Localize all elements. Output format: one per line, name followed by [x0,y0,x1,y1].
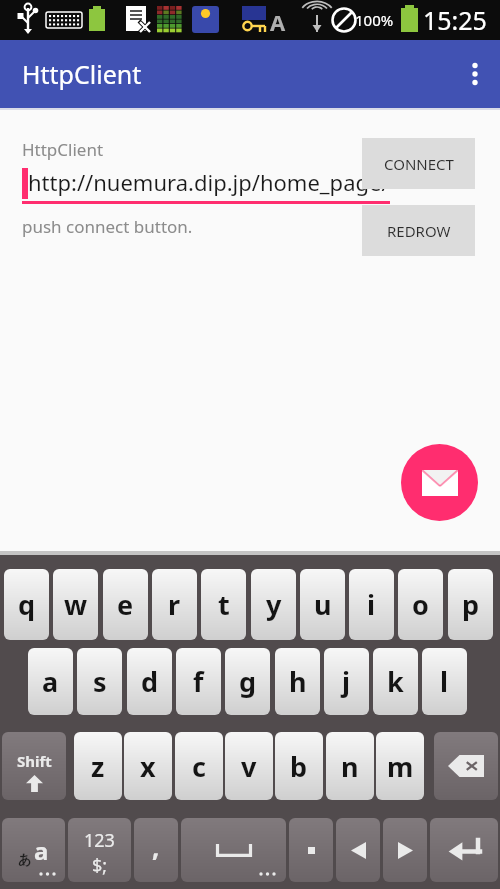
staticText: 100% [355,10,394,30]
staticText: m [387,748,414,785]
staticText: e [117,586,134,623]
staticText: y [266,586,282,623]
button[interactable]: t [201,569,246,640]
button[interactable]: . [289,818,333,882]
staticText: l [440,663,449,700]
button[interactable]: l [422,648,467,715]
staticText: i [367,586,376,623]
button[interactable]: d [127,648,172,715]
staticText: , [152,829,160,864]
button[interactable]: j [324,648,369,715]
button[interactable]: a [28,648,73,715]
staticText: t [218,586,230,623]
button[interactable]: b [275,732,323,800]
button[interactable]: z [74,732,122,800]
staticText: あ [18,851,32,867]
staticText: f [193,663,204,700]
button[interactable]: c [175,732,223,800]
button[interactable]: Space [181,818,286,882]
button[interactable]: n [326,732,374,800]
button[interactable]: w [53,569,98,640]
staticText: a [34,834,49,867]
button[interactable]: p [448,569,493,640]
staticText: r [168,586,181,623]
button[interactable]: CONNECT [362,138,475,189]
button[interactable]: Shift [2,732,66,800]
button[interactable]: 123 [68,818,131,882]
button[interactable]: y [251,569,296,640]
staticText: Shift [17,751,52,771]
staticText: s [93,663,107,700]
button[interactable]: Left [336,818,380,882]
staticText: $; [92,853,108,878]
button[interactable]: , [134,818,178,882]
staticText: k [387,663,404,700]
staticText: v [241,748,257,785]
button[interactable]: r [152,569,197,640]
button[interactable]: u [300,569,345,640]
staticText: h [289,663,307,700]
button[interactable]: More options [450,40,500,108]
button[interactable]: q [4,569,49,640]
button[interactable]: f [176,648,221,715]
button[interactable]: e [103,569,148,640]
staticText: c [192,748,206,785]
staticText: push connect button. [22,215,193,238]
staticText: z [91,748,105,785]
button[interactable]: Enter [430,818,498,882]
button[interactable]: v [225,732,273,800]
button[interactable]: Del [434,732,498,800]
staticText: CONNECT [384,154,454,174]
staticText: http://nuemura.dip.jp/home_page/ [28,167,390,197]
button[interactable]: REDROW [362,205,475,256]
staticText: REDROW [387,221,451,241]
button[interactable]: i [349,569,394,640]
staticText: HttpClient [22,138,104,161]
button[interactable]: Right [383,818,427,882]
staticText: q [18,586,36,623]
staticText: 15:25 [423,3,487,37]
staticText: g [239,663,257,700]
staticText: d [141,663,159,700]
staticText: u [314,586,332,623]
button[interactable]: m [376,732,424,800]
staticText: a [42,663,59,700]
staticText: n [341,748,359,785]
staticText: 123 [84,828,115,853]
button[interactable]: ABC [2,818,65,882]
staticText: j [342,663,351,700]
button[interactable]: s [77,648,122,715]
staticText: o [412,586,429,623]
button[interactable]: o [398,569,443,640]
staticText: w [64,586,88,623]
staticText: HttpClient [22,57,142,91]
button[interactable]: x [124,732,172,800]
staticText: b [290,748,308,785]
staticText: A [270,7,286,37]
staticText: p [462,586,480,623]
button[interactable]: Send mail [401,444,478,521]
button[interactable]: h [275,648,320,715]
button[interactable]: g [225,648,270,715]
button[interactable]: k [373,648,418,715]
staticText: x [140,748,156,785]
